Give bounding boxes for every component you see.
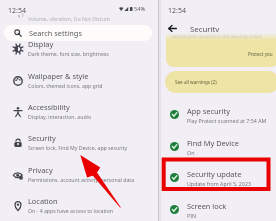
staticText: Secure your account in the Security Chec… bbox=[172, 33, 263, 39]
staticText: Security update bbox=[187, 169, 242, 179]
staticText: 12:54 bbox=[8, 6, 26, 16]
staticText: See all warnings (2) bbox=[175, 79, 217, 85]
staticText: Update from April 5, 2023 bbox=[187, 180, 251, 187]
button[interactable]: Search settings bbox=[4, 25, 152, 41]
staticText: Security bbox=[28, 133, 56, 143]
button[interactable]: Secure your account in the Security Chec… bbox=[166, 33, 276, 67]
staticText: Play Protect scanned at 7:54 AM bbox=[187, 117, 267, 124]
staticText: App security bbox=[187, 106, 230, 116]
button[interactable]: App security bbox=[161, 99, 276, 131]
staticText: Display, interaction, audio bbox=[28, 113, 92, 120]
staticText: Security bbox=[190, 24, 220, 35]
button[interactable]: Display bbox=[0, 33, 158, 64]
staticText: Colors, themed icons, app grid bbox=[28, 82, 103, 89]
button[interactable]: Privacy bbox=[0, 159, 158, 190]
button[interactable]: Find My Device bbox=[161, 131, 276, 163]
staticText: Wallpaper & style bbox=[28, 71, 89, 81]
button[interactable]: Security bbox=[0, 127, 158, 158]
staticText: Location bbox=[28, 196, 58, 206]
staticText: Find My Device bbox=[187, 138, 239, 148]
staticText: PIN bbox=[187, 212, 197, 219]
staticText: Search settings bbox=[29, 28, 82, 38]
button[interactable]: Location bbox=[0, 190, 158, 221]
button[interactable]: Back bbox=[165, 21, 179, 35]
staticText: Protect you bbox=[248, 51, 273, 57]
button[interactable]: Wallpaper & style bbox=[0, 65, 158, 96]
button[interactable]: Accessibility bbox=[0, 96, 158, 127]
staticText: On - 4 apps have access to location bbox=[28, 207, 114, 214]
staticText: On bbox=[187, 149, 195, 156]
staticText: Screen lock bbox=[187, 201, 227, 211]
staticText: Display bbox=[28, 39, 54, 49]
staticText: Privacy bbox=[28, 165, 53, 175]
button[interactable]: See all warnings (2) bbox=[165, 71, 276, 93]
button[interactable]: Screen lock bbox=[161, 194, 276, 221]
staticText: Volume, vibration, Do Not Disturb bbox=[28, 15, 111, 22]
staticText: Dark theme, font size, brightness bbox=[28, 50, 109, 57]
staticText: Accessibility bbox=[28, 102, 70, 112]
button[interactable]: Security update bbox=[161, 162, 276, 194]
staticText: Permissions, account activity, personal … bbox=[28, 176, 135, 183]
staticText: Screen lock, Find My Device, app securit… bbox=[28, 144, 128, 151]
staticText: 54% bbox=[134, 5, 146, 13]
staticText: 12:54 bbox=[168, 6, 186, 16]
